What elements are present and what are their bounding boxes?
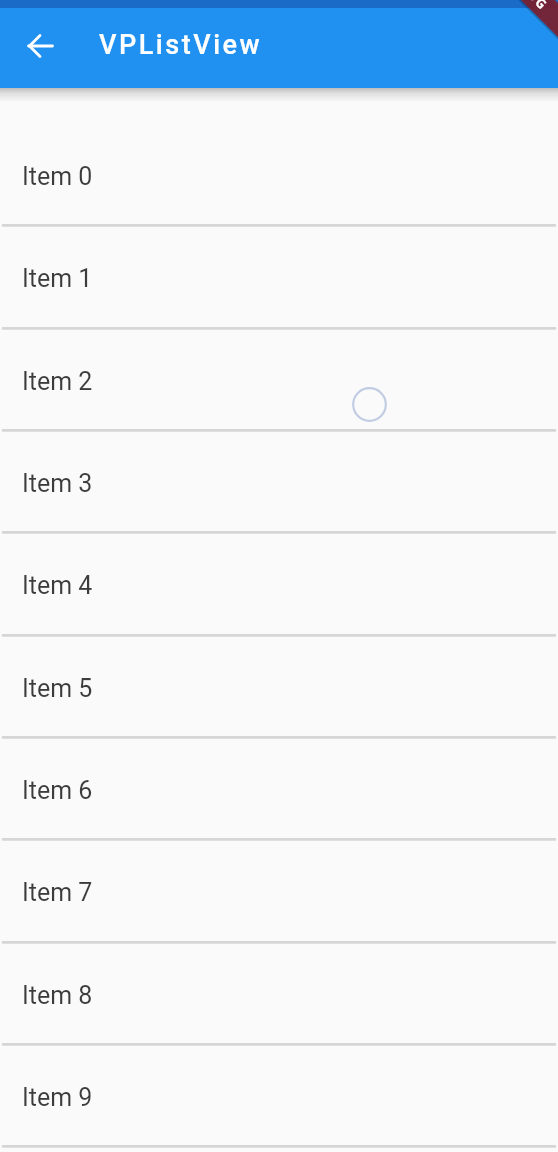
button[interactable]: Item 5	[0, 637, 558, 739]
button[interactable]: Item 0	[0, 125, 558, 227]
staticText: VPListView	[99, 29, 263, 61]
button[interactable]: Item 9	[0, 1046, 558, 1148]
staticText: Item 4	[22, 571, 93, 600]
button[interactable]: Item 8	[0, 944, 558, 1046]
staticText: Item 0	[22, 162, 93, 191]
staticText: Item 5	[22, 674, 93, 703]
button[interactable]	[24, 30, 56, 62]
staticText: Item 6	[22, 776, 93, 805]
staticText: Item 9	[22, 1083, 93, 1112]
staticText: Item 2	[22, 367, 93, 396]
staticText: DEBUG	[502, 0, 552, 14]
staticText: Item 8	[22, 981, 93, 1010]
button[interactable]: Item 2	[0, 330, 558, 432]
button[interactable]: Item 6	[0, 739, 558, 841]
staticText: Item 1	[22, 264, 93, 293]
staticText: Item 3	[22, 469, 93, 498]
button[interactable]: Item 7	[0, 841, 558, 944]
button[interactable]: Item 1	[0, 227, 558, 330]
button[interactable]: Item 3	[0, 432, 558, 534]
staticText: Item 7	[22, 878, 93, 907]
button[interactable]: Item 4	[0, 534, 558, 637]
